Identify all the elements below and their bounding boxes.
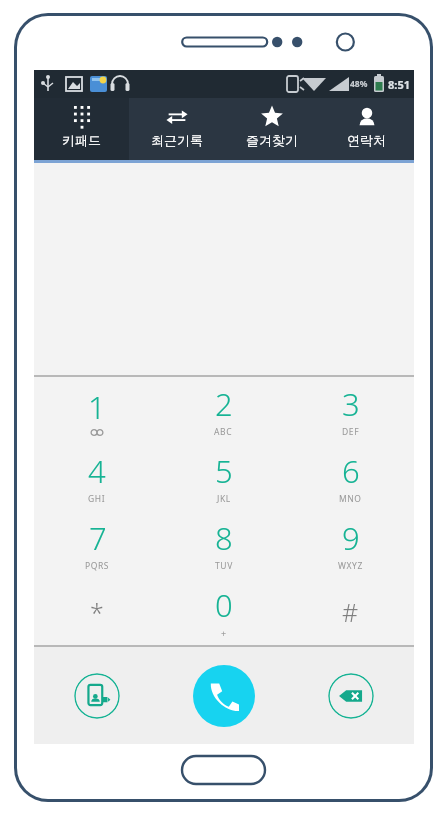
- staticText: 0: [215, 584, 233, 626]
- staticText: 4: [88, 450, 106, 492]
- button[interactable]: 6: [287, 444, 414, 511]
- other: Keypad: [71, 106, 93, 128]
- staticText: 5: [215, 450, 233, 492]
- other: Contacts: [356, 106, 378, 128]
- staticText: JKL: [217, 493, 231, 505]
- other: Recent calls: [166, 106, 188, 128]
- button[interactable]: 5: [160, 444, 287, 511]
- button[interactable]: 1: [34, 377, 160, 444]
- staticText: 48%: [350, 78, 368, 90]
- button[interactable]: 7: [34, 511, 160, 578]
- button[interactable]: 4: [34, 444, 160, 511]
- button[interactable]: Contacts: [319, 98, 414, 160]
- staticText: 즐겨찾기: [246, 132, 298, 148]
- button[interactable]: Backspace: [328, 673, 374, 719]
- other: Favorites: [261, 106, 283, 128]
- staticText: ABC: [214, 426, 233, 438]
- staticText: 연락처: [347, 132, 386, 148]
- button[interactable]: Recent calls: [129, 98, 224, 160]
- staticText: *: [90, 595, 104, 629]
- staticText: 2: [215, 383, 233, 425]
- staticText: TUV: [215, 560, 233, 572]
- button[interactable]: 2: [160, 377, 287, 444]
- staticText: GHI: [88, 493, 106, 505]
- staticText: DEF: [342, 426, 360, 438]
- staticText: 7: [89, 517, 107, 559]
- staticText: 3: [342, 383, 360, 425]
- button[interactable]: 0: [160, 578, 287, 645]
- button[interactable]: Video call: [74, 673, 120, 719]
- staticText: PQRS: [85, 560, 110, 572]
- button[interactable]: Favorites: [224, 98, 319, 160]
- button[interactable]: 3: [287, 377, 414, 444]
- staticText: #: [342, 595, 359, 629]
- staticText: 1: [88, 386, 106, 428]
- staticText: MNO: [339, 493, 362, 505]
- button[interactable]: 9: [287, 511, 414, 578]
- staticText: 8:51: [388, 77, 410, 92]
- staticText: WXYZ: [338, 560, 363, 572]
- button[interactable]: Keypad: [34, 98, 129, 160]
- button[interactable]: #: [287, 578, 414, 645]
- staticText: 8: [215, 517, 233, 559]
- button[interactable]: Call: [193, 665, 255, 727]
- staticText: 6: [342, 450, 360, 492]
- staticText: 키패드: [62, 132, 101, 148]
- staticText: +: [221, 627, 227, 639]
- staticText: 최근기록: [151, 132, 203, 148]
- button[interactable]: 8: [160, 511, 287, 578]
- button[interactable]: *: [34, 578, 160, 645]
- staticText: 9: [342, 517, 360, 559]
